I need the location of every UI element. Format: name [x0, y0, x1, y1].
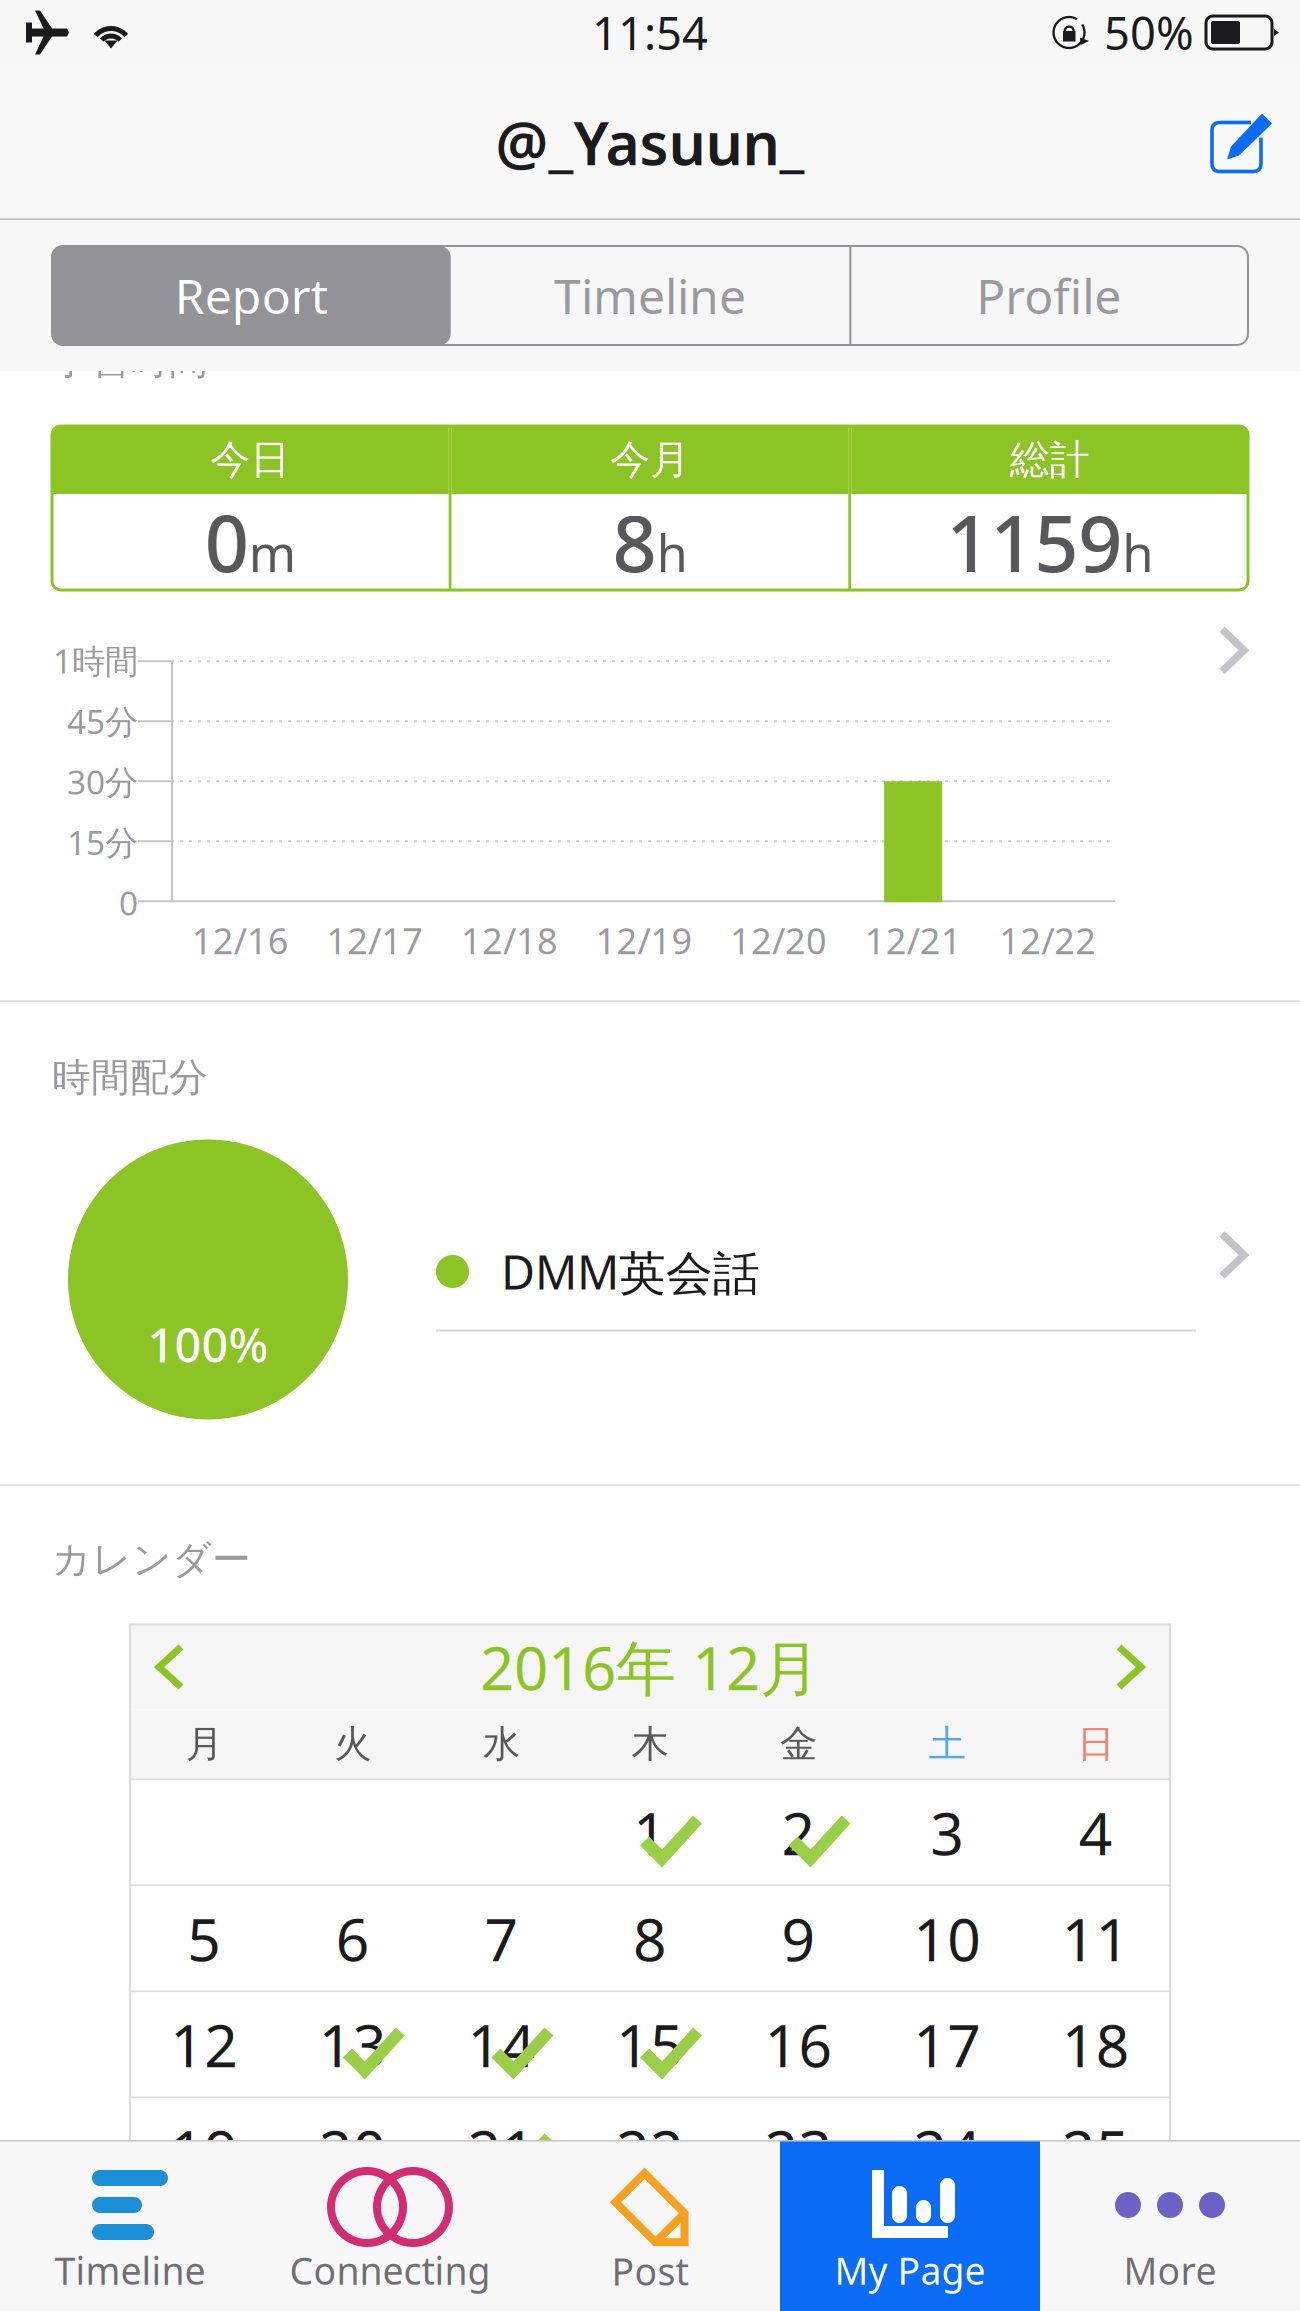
staticText: 1時間 — [53, 638, 138, 683]
staticText: 5 — [187, 1899, 221, 1977]
button[interactable]: My Page — [780, 2140, 1040, 2311]
button[interactable]: Connecting — [260, 2140, 520, 2311]
staticText: 8 — [612, 491, 656, 593]
staticText: 13 — [319, 2005, 387, 2083]
staticText: 今月 — [610, 435, 690, 484]
staticText: Post — [611, 2246, 688, 2296]
staticText: 28 — [467, 2217, 535, 2295]
button[interactable]: Next month — [1090, 1629, 1170, 1705]
staticText: m — [249, 519, 296, 586]
staticText: 100% — [147, 1313, 268, 1375]
staticText: 9 — [782, 1899, 816, 1977]
staticText: 29 — [616, 2217, 684, 2295]
staticText: 10 — [913, 1899, 981, 1977]
staticText: 今日 — [210, 435, 290, 484]
staticText: 12/17 — [326, 916, 423, 964]
staticText: 23 — [765, 2111, 833, 2189]
staticText: 45分 — [67, 699, 138, 743]
staticText: Profile — [976, 264, 1121, 327]
staticText: 8 — [633, 1899, 667, 1977]
button[interactable]: More — [1040, 2140, 1300, 2311]
staticText: 26 — [170, 2217, 238, 2295]
staticText: 14 — [467, 2005, 535, 2083]
staticText: 火 — [334, 1721, 371, 1767]
staticText: 30分 — [67, 759, 138, 804]
staticText: 16 — [765, 2005, 833, 2083]
staticText: 30 — [765, 2217, 833, 2295]
staticText: My Page — [834, 2245, 985, 2295]
staticText: 6 — [336, 1899, 370, 1977]
staticText: 日 — [1077, 1721, 1114, 1767]
staticText: Timeline — [54, 2245, 205, 2295]
button[interactable]: Compose — [1182, 81, 1300, 203]
staticText: 12 — [170, 2005, 238, 2083]
staticText: h — [656, 519, 687, 586]
staticText: Connecting — [289, 2245, 490, 2295]
staticText: 1 — [633, 1793, 667, 1871]
staticText: 学習時間 — [52, 336, 208, 384]
staticText: 総計 — [1010, 435, 1090, 484]
staticText: 15分 — [67, 820, 138, 864]
staticText: 金 — [780, 1721, 817, 1767]
button[interactable]: Timeline — [451, 246, 849, 345]
staticText: 7 — [484, 1899, 518, 1977]
button[interactable]: Report — [52, 246, 451, 345]
staticText: More — [1123, 2245, 1216, 2295]
staticText: 12/20 — [730, 916, 827, 964]
staticText: 1159 — [946, 491, 1122, 593]
staticText: 12/22 — [999, 916, 1096, 964]
staticText: 18 — [1062, 2005, 1130, 2083]
staticText: 木 — [631, 1721, 668, 1767]
staticText: 31 — [913, 2217, 981, 2295]
staticText: 12/18 — [461, 916, 558, 964]
staticText: Timeline — [554, 264, 746, 327]
staticText: 月 — [186, 1721, 223, 1767]
button[interactable]: Post — [520, 2140, 780, 2311]
staticText: 4 — [1079, 1793, 1113, 1871]
staticText: カレンダー — [52, 1536, 251, 1583]
staticText: 時間配分 — [52, 1054, 208, 1101]
staticText: 11 — [1062, 1899, 1130, 1977]
button[interactable]: Profile — [849, 246, 1248, 345]
staticText: 11:54 — [592, 2, 708, 63]
staticText: 0 — [119, 880, 138, 925]
staticText: h — [1122, 519, 1153, 586]
button[interactable]: Timeline — [0, 2140, 260, 2311]
staticText: @_Yasuun_ — [495, 103, 804, 181]
staticText: 水 — [483, 1721, 520, 1767]
staticText: 3 — [930, 1793, 964, 1871]
staticText: Report — [175, 264, 328, 327]
staticText: 15 — [616, 2005, 684, 2083]
staticText: 12/19 — [595, 916, 692, 964]
staticText: 24 — [913, 2111, 981, 2189]
staticText: 17 — [913, 2005, 981, 2083]
button[interactable]: Previous month — [130, 1629, 210, 1705]
staticText: 22 — [616, 2111, 684, 2189]
staticText: DMM英会話 — [501, 1240, 760, 1303]
staticText: 2016年 12月 — [480, 1627, 820, 1707]
staticText: 25 — [1062, 2111, 1130, 2189]
staticText: 2 — [782, 1793, 816, 1871]
staticText: 土 — [929, 1721, 966, 1767]
staticText: 20 — [319, 2111, 387, 2189]
staticText: 12/21 — [865, 916, 962, 964]
staticText: 12/16 — [192, 916, 289, 964]
staticText: 27 — [319, 2217, 387, 2295]
staticText: 19 — [170, 2111, 238, 2189]
staticText: 21 — [467, 2111, 535, 2189]
staticText: 50% — [1104, 2, 1194, 63]
staticText: 0 — [205, 491, 249, 593]
